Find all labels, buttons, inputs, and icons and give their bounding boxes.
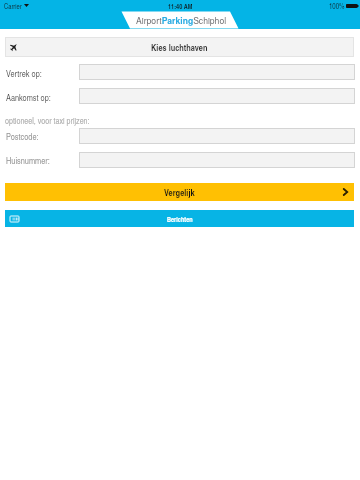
staticText: Huisnummer: — [6, 154, 50, 166]
other: Messages — [10, 216, 19, 222]
staticText: Berichten — [167, 214, 193, 224]
staticText: 11:40 AM — [168, 1, 193, 11]
staticText: Vergelijk — [164, 186, 195, 199]
button[interactable]: Choose airport — [5, 37, 354, 57]
button[interactable]: Messages — [5, 210, 354, 227]
staticText: Postcode: — [6, 130, 39, 142]
button[interactable] — [79, 152, 355, 168]
other: Choose airport — [10, 43, 18, 51]
other: Wi-Fi — [24, 4, 29, 7]
staticText: Aankomst op: — [6, 91, 51, 103]
other: Battery full — [346, 4, 359, 8]
button[interactable]: Vergelijk — [5, 183, 354, 201]
button[interactable] — [79, 128, 355, 144]
staticText: optioneel, voor taxi prijzen: — [5, 115, 90, 127]
staticText: AirportParkingSchiphol — [136, 14, 227, 27]
button[interactable] — [79, 64, 355, 80]
staticText: 100% — [329, 1, 345, 11]
button[interactable] — [79, 88, 355, 104]
other: Continue — [343, 188, 348, 196]
staticText: Carrier — [4, 1, 22, 11]
staticText: Kies luchthaven — [151, 41, 208, 54]
staticText: Vertrek op: — [6, 67, 42, 79]
